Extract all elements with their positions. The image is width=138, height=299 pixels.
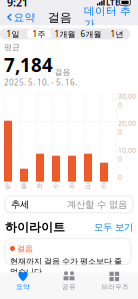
staticText: 30,000 bbox=[118, 92, 136, 109]
staticText: 0 bbox=[118, 173, 122, 182]
staticText: 요약 bbox=[13, 11, 35, 24]
button[interactable]: 6개월 bbox=[78, 28, 104, 39]
staticText: 1주 bbox=[32, 29, 45, 39]
button[interactable]: 요약 bbox=[3, 9, 39, 25]
staticText: 걸음 bbox=[48, 10, 72, 25]
button[interactable]: 걸음 bbox=[5, 239, 131, 265]
button[interactable]: 1일 bbox=[0, 28, 26, 39]
staticText: 1년 bbox=[110, 29, 123, 39]
staticText: 공유 bbox=[62, 283, 76, 291]
staticText: 데이터 추가 bbox=[84, 4, 131, 30]
staticText: 7,184 bbox=[4, 52, 53, 77]
button[interactable]: 요약 bbox=[0, 270, 46, 292]
button[interactable]: 1년 bbox=[104, 28, 130, 39]
staticText: 걸음 bbox=[54, 67, 70, 77]
staticText: 목 bbox=[68, 182, 75, 190]
staticText: 브라우즈 bbox=[101, 283, 129, 291]
staticText: 추세 bbox=[11, 199, 29, 210]
staticText: 현재까지 걸음 수가 평소보다 줄었습니다. bbox=[10, 256, 122, 277]
staticText: 1개월 bbox=[54, 29, 75, 39]
button[interactable]: 모두 보기 bbox=[94, 221, 133, 233]
staticText: LTE bbox=[106, 0, 119, 8]
button[interactable]: 브라우즈 bbox=[92, 270, 138, 292]
staticText: 9:21 bbox=[7, 0, 28, 9]
staticText: 1일 bbox=[6, 29, 19, 39]
button[interactable]: 1개월 bbox=[52, 28, 78, 39]
staticText: 10,000 bbox=[118, 146, 136, 163]
staticText: 월 bbox=[20, 182, 27, 190]
staticText: 평균 bbox=[4, 42, 20, 52]
button[interactable]: 1주 bbox=[26, 28, 52, 39]
button[interactable]: 추세 bbox=[5, 196, 133, 213]
staticText: 수 bbox=[52, 182, 59, 190]
staticText: 금 bbox=[84, 182, 91, 190]
staticText: 화 bbox=[36, 182, 43, 190]
staticText: 6개월 bbox=[80, 29, 101, 39]
staticText: 요약 bbox=[16, 283, 30, 291]
staticText: 2025. 5. 10. - 5. 16. bbox=[4, 77, 77, 88]
staticText: 하이라이트 bbox=[5, 220, 65, 234]
staticText: 계산할 수 없음 bbox=[67, 199, 127, 210]
button[interactable]: 공유 bbox=[46, 270, 92, 292]
staticText: 20,000 bbox=[118, 119, 136, 136]
staticText: 토 bbox=[100, 182, 107, 190]
staticText: 일 bbox=[4, 182, 11, 190]
button[interactable]: 데이터 추가 bbox=[80, 9, 135, 25]
staticText: 모두 보기 bbox=[94, 221, 133, 233]
staticText: 걸음 bbox=[17, 244, 33, 253]
